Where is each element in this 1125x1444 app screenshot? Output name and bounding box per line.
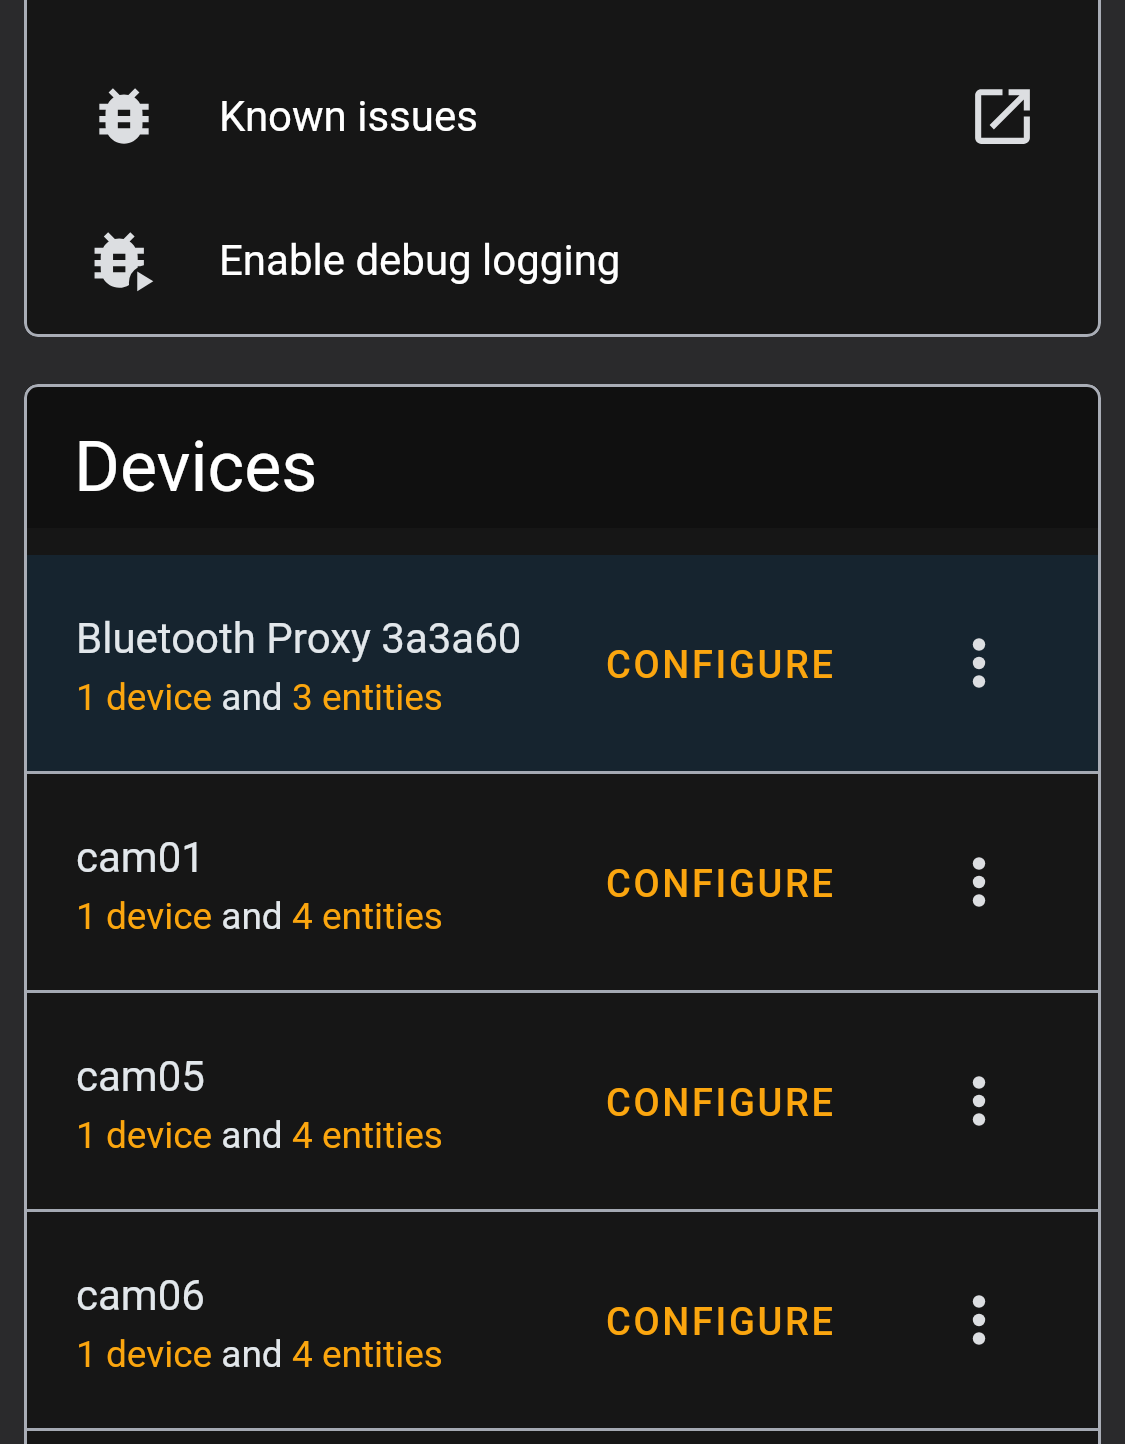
button[interactable]: More options	[931, 615, 1027, 711]
button[interactable]: More options	[931, 1053, 1027, 1149]
button[interactable]: More options	[931, 834, 1027, 930]
button[interactable]: cam01	[24, 774, 1101, 990]
staticText: 1 device and 4 entities	[76, 895, 443, 938]
staticText: CONFIGURE	[606, 643, 836, 688]
button[interactable]: Bluetooth Proxy 3a3a60	[24, 555, 1101, 771]
staticText: cam05	[76, 1052, 205, 1101]
staticText: CONFIGURE	[606, 1081, 836, 1126]
button[interactable]: CONFIGURE	[576, 1212, 860, 1428]
staticText: cam06	[76, 1271, 205, 1320]
button[interactable]: More options	[931, 1272, 1027, 1368]
button[interactable]: Open in new window	[952, 66, 1052, 166]
button[interactable]: cam05	[24, 993, 1101, 1209]
staticText: 1 device and 4 entities	[76, 1114, 443, 1157]
staticText: Devices	[74, 426, 318, 508]
button[interactable]: Enable debug logging	[24, 188, 1101, 332]
button[interactable]: cam06	[24, 1212, 1101, 1428]
button[interactable]: CONFIGURE	[576, 555, 860, 771]
staticText: 1 device and 4 entities	[76, 1333, 443, 1376]
staticText: Bluetooth Proxy 3a3a60	[76, 614, 522, 663]
staticText: Enable debug logging	[219, 236, 621, 285]
button[interactable]: Known issues	[24, 44, 1101, 188]
button[interactable]: CONFIGURE	[576, 774, 860, 990]
staticText: CONFIGURE	[606, 1300, 836, 1345]
button[interactable]: CONFIGURE	[576, 993, 860, 1209]
staticText: cam01	[76, 833, 205, 882]
staticText: Known issues	[219, 92, 478, 141]
staticText: CONFIGURE	[606, 862, 836, 907]
staticText: 1 device and 3 entities	[76, 676, 443, 719]
